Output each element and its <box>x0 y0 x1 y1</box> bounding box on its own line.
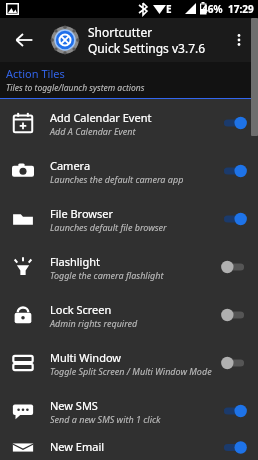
button[interactable]: Toggle <box>220 209 248 229</box>
staticText: Admin rights required <box>50 317 138 329</box>
button[interactable]: Add Calendar Event <box>0 99 258 147</box>
staticText: Tiles to toggle/launch system actions <box>6 82 145 94</box>
button[interactable]: Toggle <box>220 161 248 181</box>
button[interactable]: Toggle <box>220 113 248 133</box>
button[interactable]: More options <box>224 25 254 55</box>
button[interactable]: New Email <box>0 435 258 460</box>
staticText: File Browser <box>50 206 114 221</box>
staticText: Launches default file browser <box>50 221 167 233</box>
staticText: Add A Calendar Event <box>50 125 136 137</box>
button[interactable]: Lock Screen <box>0 291 258 339</box>
staticText: Add Calendar Event <box>50 110 152 125</box>
staticText: Multi Window <box>50 350 121 365</box>
staticText: Toggle the camera flashlight <box>50 269 164 281</box>
button[interactable]: Toggle <box>220 257 248 277</box>
staticText: Launches the default camera app <box>50 173 184 185</box>
staticText: Send a new SMS with 1 click <box>50 413 161 425</box>
button[interactable]: Back <box>8 24 40 56</box>
button[interactable]: File Browser <box>0 195 258 243</box>
button[interactable]: New SMS <box>0 387 258 435</box>
button[interactable]: Flashlight <box>0 243 258 291</box>
staticText: Action Tiles <box>6 66 65 81</box>
button[interactable]: Toggle <box>220 401 248 421</box>
button[interactable]: Multi Window <box>0 339 258 387</box>
staticText: E <box>166 2 172 16</box>
staticText: Lock Screen <box>50 302 112 317</box>
staticText: Flashlight <box>50 254 100 269</box>
staticText: Camera <box>50 158 91 173</box>
staticText: Quick Settings v3.7.6 <box>88 40 206 56</box>
staticText: Toggle Split Screen / Multi Window Mode <box>50 365 212 377</box>
staticText: 17:29 <box>228 2 254 16</box>
button[interactable]: Camera <box>0 147 258 195</box>
staticText: New SMS <box>50 398 98 413</box>
button[interactable]: Toggle <box>220 439 248 456</box>
staticText: Shortcutter <box>88 24 153 40</box>
staticText: New Email <box>50 439 105 454</box>
staticText: 46% <box>202 2 223 16</box>
button[interactable]: Toggle <box>220 305 248 325</box>
button[interactable]: Toggle <box>220 353 248 373</box>
